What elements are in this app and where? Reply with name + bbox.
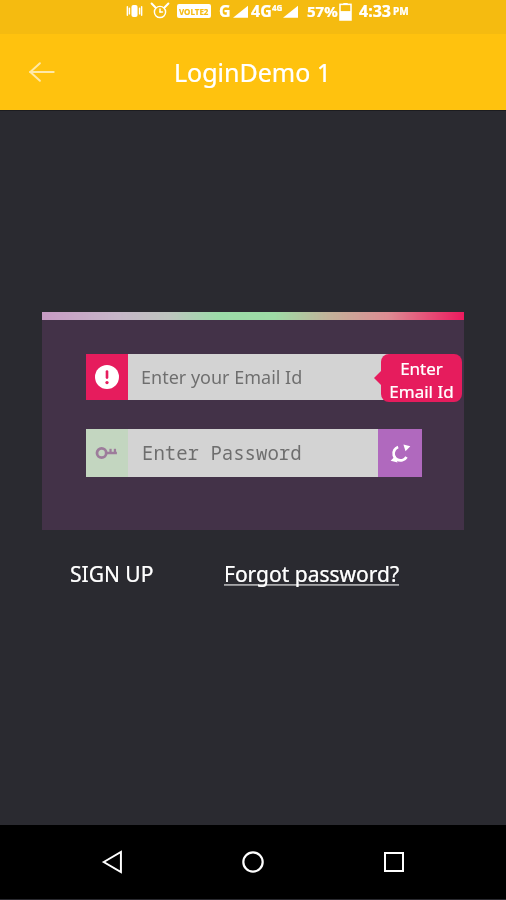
button[interactable]: SIGN UP bbox=[66, 554, 158, 595]
staticText: 57% bbox=[307, 1, 338, 21]
staticText: 4G bbox=[251, 0, 272, 22]
button[interactable]: Home bbox=[225, 834, 281, 890]
staticText: Enter your Email Id bbox=[141, 365, 303, 390]
staticText: Email Id bbox=[389, 380, 454, 399]
staticText: Enter Password bbox=[142, 440, 302, 466]
button[interactable]: Enter bbox=[381, 354, 462, 402]
staticText: LoginDemo 1 bbox=[174, 55, 332, 89]
staticText: SIGN UP bbox=[70, 560, 154, 589]
button[interactable]: Enter Password bbox=[86, 429, 422, 477]
staticText: Enter bbox=[400, 357, 443, 380]
staticText: G bbox=[219, 0, 231, 22]
button[interactable]: Back bbox=[20, 50, 64, 94]
button[interactable]: Forgot password? bbox=[220, 554, 404, 595]
staticText: PM bbox=[393, 4, 409, 18]
staticText: Forgot password? bbox=[224, 560, 400, 589]
button[interactable]: Back bbox=[85, 834, 141, 890]
staticText: 4:33 bbox=[359, 0, 391, 22]
button[interactable]: Recents bbox=[366, 834, 422, 890]
staticText: 4G bbox=[272, 2, 283, 13]
button[interactable]: Enter your Email Id bbox=[86, 354, 422, 400]
staticText: VOLTE2 bbox=[179, 6, 209, 17]
button[interactable]: Refresh captcha bbox=[378, 429, 422, 477]
